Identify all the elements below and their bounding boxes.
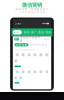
staticText: 我的 (45, 31, 51, 34)
button[interactable]: Shortcut (44, 53, 50, 56)
button[interactable]: 数据 (38, 31, 44, 34)
staticText: 详情 (44, 37, 50, 41)
staticText: 推广 (31, 31, 37, 34)
button[interactable]: Shortcut (32, 53, 38, 56)
button[interactable]: More (14, 59, 17, 62)
button[interactable]: Shortcut (14, 53, 20, 56)
button[interactable]: Shortcut (20, 53, 26, 56)
button[interactable]: Shortcut (32, 70, 38, 73)
button[interactable]: Shortcut (38, 70, 44, 73)
button[interactable]: 首页 (24, 31, 30, 34)
button[interactable]: Shortcut (44, 70, 50, 73)
staticText: 数据 (38, 31, 44, 34)
button[interactable]: Item two (19, 76, 22, 79)
staticText: 一站式私域运营方案 (18, 10, 45, 14)
staticText: 微信营销 (22, 2, 42, 8)
button[interactable]: 新 (13, 36, 51, 42)
button[interactable]: Shortcut (14, 70, 20, 73)
button[interactable]: Shortcut (20, 70, 26, 73)
staticText: 营销助手全新升级 (20, 36, 41, 42)
staticText: 立即体验 (15, 43, 27, 46)
button[interactable]: 推广 (31, 31, 37, 34)
staticText: 高效获客 · 精准触达用户 (15, 7, 48, 11)
button[interactable]: Shortcut (26, 70, 32, 73)
staticText: 新 (15, 37, 18, 41)
button[interactable]: Item one (14, 76, 17, 79)
staticText: 首页 (24, 31, 30, 34)
button[interactable]: Shortcut (26, 53, 32, 56)
button[interactable]: 我的 (45, 31, 51, 34)
staticText: 免费领取权益 (30, 43, 48, 46)
button[interactable]: 立即体验 (14, 43, 28, 46)
staticText: 9:41 (15, 22, 22, 25)
button[interactable]: Shortcut (38, 53, 44, 56)
button[interactable]: Search (13, 30, 22, 34)
